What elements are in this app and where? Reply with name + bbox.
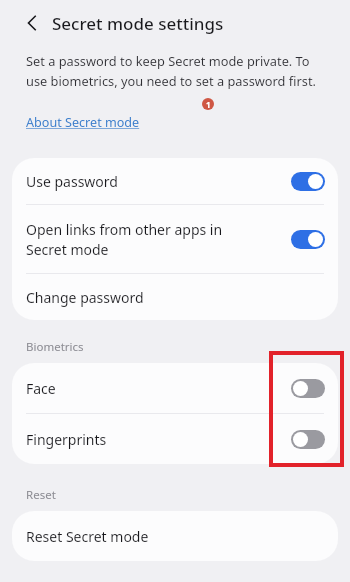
button[interactable]: Reset Secret mode: [12, 511, 338, 561]
button[interactable]: Open links from other apps in Secret mod…: [12, 205, 338, 273]
staticText: Open links from other apps in Secret mod…: [26, 220, 291, 259]
staticText: About Secret mode: [26, 114, 140, 131]
button[interactable]: Change password: [12, 274, 338, 320]
staticText: Secret mode settings: [52, 12, 224, 35]
button[interactable]: Fingerprints: [12, 414, 338, 464]
staticText: Face: [26, 379, 291, 398]
button[interactable]: Face: [12, 363, 338, 413]
staticText: Reset: [26, 487, 56, 503]
staticText: Biometrics: [26, 339, 84, 355]
staticText: Reset Secret mode: [26, 527, 325, 546]
staticText: Use password: [26, 172, 291, 191]
staticText: Fingerprints: [26, 430, 291, 449]
button[interactable]: About Secret mode: [26, 114, 140, 131]
staticText: Set a password to keep Secret mode priva…: [26, 52, 330, 90]
staticText: Change password: [26, 288, 325, 307]
button[interactable]: Use password: [12, 158, 338, 204]
button[interactable]: Back: [20, 11, 44, 35]
staticText: 1: [206, 99, 211, 110]
